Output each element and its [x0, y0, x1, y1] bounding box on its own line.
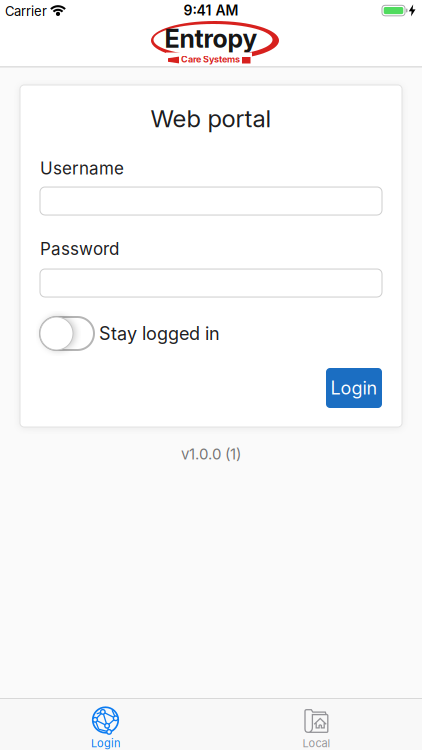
- button[interactable]: Local: [211, 699, 422, 750]
- staticText: Login: [330, 377, 377, 399]
- button[interactable]: Username: [40, 187, 382, 215]
- staticText: Login: [91, 736, 120, 750]
- button[interactable]: Login: [0, 699, 211, 750]
- staticText: Username: [40, 158, 124, 179]
- staticText: Web portal: [150, 104, 271, 133]
- staticText: Password: [40, 238, 119, 259]
- staticText: Entropy: [164, 23, 257, 54]
- button[interactable]: Password: [40, 269, 382, 297]
- staticText: Carrier: [5, 3, 47, 19]
- button[interactable]: Login: [326, 368, 382, 408]
- staticText: Stay logged in: [99, 323, 220, 344]
- staticText: 9:41 AM: [183, 2, 238, 19]
- staticText: v1.0.0 (1): [181, 445, 241, 463]
- button[interactable]: Stay logged in: [40, 317, 220, 350]
- staticText: Local: [302, 736, 330, 750]
- staticText: Care Systems: [181, 54, 240, 65]
